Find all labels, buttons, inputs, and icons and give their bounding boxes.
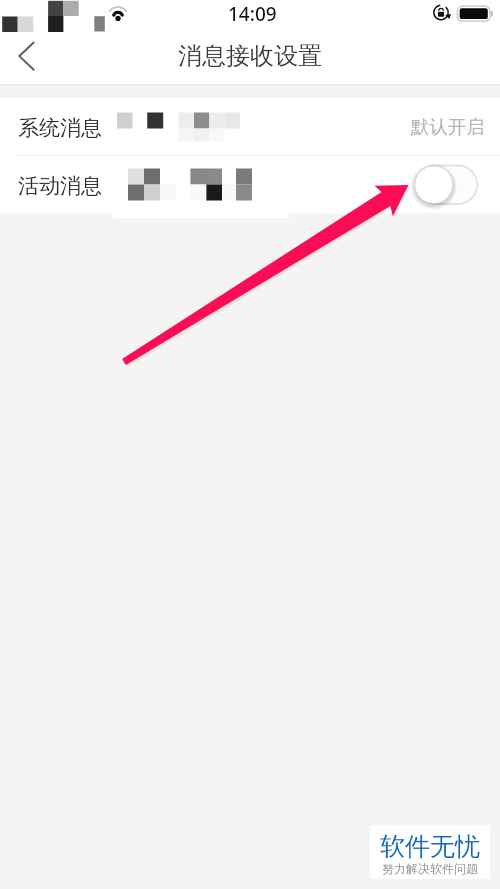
- staticText: 14:09: [228, 1, 277, 27]
- button[interactable]: 活动消息: [0, 156, 500, 213]
- staticText: 努力解决软件问题: [382, 861, 478, 876]
- staticText: 默认开启: [411, 115, 485, 138]
- button[interactable]: 系统消息: [0, 98, 500, 155]
- staticText: 消息接收设置: [178, 41, 322, 71]
- staticText: 软件无忧: [380, 831, 480, 862]
- staticText: 系统消息: [18, 115, 102, 141]
- staticText: 活动消息: [18, 173, 102, 199]
- button[interactable]: Back: [0, 28, 53, 84]
- button[interactable]: Toggle activity messages: [409, 159, 485, 211]
